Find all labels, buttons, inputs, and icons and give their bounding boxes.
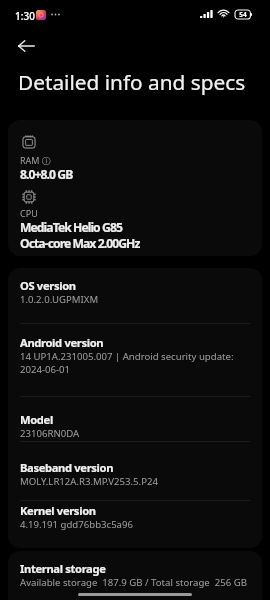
staticText: 4.19.191 gdd76bb3c5a96 xyxy=(20,518,133,531)
button[interactable]: OS version xyxy=(8,268,262,323)
staticText: 1.0.2.0.UGPMIXM xyxy=(20,293,99,306)
button[interactable]: Back xyxy=(7,34,45,58)
staticText: OS version xyxy=(20,278,76,293)
staticText: Available storage 187.9 GB / Total stora… xyxy=(20,576,247,589)
staticText: CPU xyxy=(20,207,38,219)
staticText: MOLY.LR12A.R3.MP.V253.5.P24 xyxy=(20,475,158,488)
button[interactable]: Model xyxy=(8,402,262,441)
staticText: 14 UP1A.231005.007 | Android security up… xyxy=(20,350,234,376)
staticText: Detailed info and specs xyxy=(18,68,246,96)
staticText: 23106RN0DA xyxy=(20,427,80,440)
staticText: Android version xyxy=(20,335,104,350)
staticText: RAM ⓘ xyxy=(20,154,51,166)
staticText: Kernel version xyxy=(20,503,96,518)
staticText: Model xyxy=(20,412,53,427)
staticText: Internal storage xyxy=(20,561,106,576)
staticText: 1:30 xyxy=(15,9,35,23)
staticText: 54 xyxy=(239,10,247,19)
button[interactable]: CPU xyxy=(8,179,262,249)
button[interactable]: RAM ⓘ xyxy=(8,126,262,190)
button[interactable]: Android version xyxy=(8,325,262,396)
staticText: 8.0+8.0 GB xyxy=(20,166,73,183)
button[interactable]: Kernel version xyxy=(8,493,262,537)
button[interactable]: Internal storage xyxy=(8,551,262,600)
staticText: MediaTek Helio G85 Octa-core Max 2.00GHz xyxy=(20,219,140,249)
staticText: Baseband version xyxy=(20,460,114,475)
button[interactable]: Baseband version xyxy=(8,450,262,493)
